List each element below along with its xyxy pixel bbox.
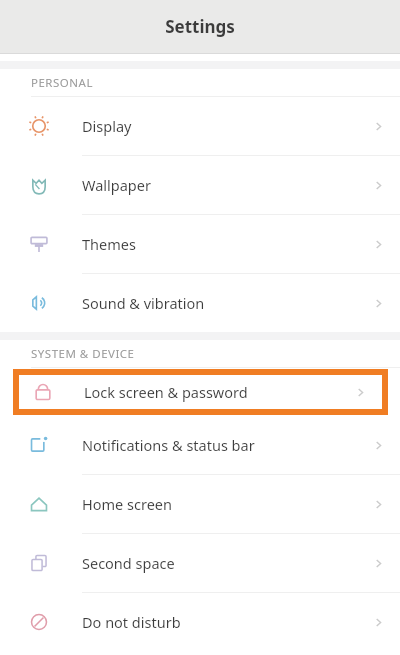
button[interactable]: Do not disturb [0, 593, 400, 651]
other: Open [371, 438, 386, 453]
staticText: Do not disturb [82, 612, 181, 632]
staticText: Sound & vibration [82, 293, 205, 313]
staticText: PERSONAL [31, 75, 93, 91]
staticText: Display [82, 116, 132, 136]
other: Open [371, 119, 386, 134]
button[interactable]: Notifications & status bar [0, 416, 400, 474]
other: Open [371, 497, 386, 512]
other: Open [371, 237, 386, 252]
staticText: Lock screen & password [84, 382, 248, 402]
staticText: Notifications & status bar [82, 435, 255, 455]
staticText: Wallpaper [82, 175, 151, 195]
other: Open [371, 178, 386, 193]
staticText: Home screen [82, 494, 172, 514]
button[interactable]: Wallpaper [0, 156, 400, 214]
button[interactable]: Display [0, 97, 400, 155]
staticText: Second space [82, 553, 175, 573]
staticText: Settings [165, 15, 235, 38]
other: Open [371, 296, 386, 311]
button[interactable]: Themes [0, 215, 400, 273]
staticText: Themes [82, 234, 136, 254]
button[interactable]: Lock screen & password [19, 375, 382, 409]
button[interactable]: Sound & vibration [0, 274, 400, 332]
button[interactable]: Second space [0, 534, 400, 592]
other: Open [371, 556, 386, 571]
button[interactable]: Home screen [0, 475, 400, 533]
other: Open [371, 615, 386, 630]
other: Open [353, 385, 368, 400]
staticText: SYSTEM & DEVICE [31, 346, 135, 362]
